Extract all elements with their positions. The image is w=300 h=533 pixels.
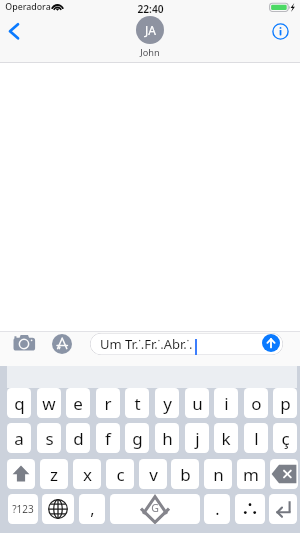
button[interactable]: JA — [120, 16, 180, 57]
button[interactable]: l — [244, 423, 268, 453]
staticText: c — [116, 463, 125, 486]
button[interactable]: c — [106, 459, 134, 489]
button[interactable]: g — [125, 423, 149, 453]
staticText: ç — [281, 427, 290, 450]
button[interactable]: r — [96, 388, 120, 418]
staticText: k — [221, 427, 231, 450]
button[interactable]: Change keyboard — [42, 494, 74, 524]
button[interactable]: t — [125, 388, 149, 418]
staticText: e — [73, 392, 83, 415]
staticText: m — [243, 463, 259, 486]
staticText: JA — [145, 22, 156, 38]
button[interactable]: p — [273, 388, 297, 418]
button[interactable]: App Store — [52, 334, 72, 354]
staticText: j — [195, 427, 200, 450]
staticText: v — [149, 463, 158, 486]
staticText: . — [215, 498, 220, 520]
staticText: b — [180, 463, 191, 486]
button[interactable]: Return — [269, 494, 297, 524]
button[interactable]: q — [7, 388, 31, 418]
button[interactable]: , — [79, 494, 105, 524]
button[interactable]: y — [155, 388, 179, 418]
staticText: 22:40 — [135, 2, 166, 16]
staticText: u — [192, 392, 203, 415]
staticText: Um Tr.˙.Fr.˙.Abr.˙. — [100, 335, 193, 353]
button[interactable]: i — [214, 388, 238, 418]
staticText: t — [134, 392, 141, 415]
button[interactable]: . — [204, 494, 230, 524]
button[interactable]: b — [171, 459, 199, 489]
button[interactable]: m — [237, 459, 265, 489]
staticText: l — [254, 427, 259, 450]
button[interactable]: e — [66, 388, 90, 418]
button[interactable]: Info — [272, 23, 289, 40]
button[interactable]: Camera — [13, 334, 36, 352]
button[interactable]: j — [185, 423, 209, 453]
staticText: ?123 — [12, 502, 34, 516]
button[interactable]: h — [155, 423, 179, 453]
button[interactable]: o — [244, 388, 268, 418]
button[interactable]: d — [66, 423, 90, 453]
button[interactable]: Shift — [7, 459, 35, 489]
button[interactable]: x — [73, 459, 101, 489]
staticText: y — [163, 392, 172, 415]
button[interactable]: Um Tr.˙.Fr.˙.Abr.˙. — [90, 333, 283, 355]
button[interactable]: z — [40, 459, 68, 489]
button[interactable]: ?123 — [8, 494, 38, 524]
button[interactable]: Three dots — [235, 494, 265, 524]
button[interactable]: u — [185, 388, 209, 418]
staticText: s — [45, 427, 54, 450]
staticText: f — [105, 427, 111, 450]
staticText: o — [251, 392, 262, 415]
staticText: a — [14, 427, 24, 450]
staticText: p — [280, 392, 291, 415]
staticText: g — [132, 427, 143, 450]
staticText: r — [104, 392, 112, 415]
staticText: z — [50, 463, 58, 486]
staticText: h — [162, 427, 173, 450]
staticText: John — [120, 46, 180, 59]
button[interactable]: Back — [2, 16, 26, 50]
button[interactable]: f — [96, 423, 120, 453]
staticText: i — [224, 392, 229, 415]
staticText: n — [213, 463, 224, 486]
button[interactable]: v — [139, 459, 167, 489]
staticText: x — [83, 463, 92, 486]
button[interactable]: Backspace — [270, 459, 298, 489]
staticText: q — [14, 392, 25, 415]
button[interactable]: w — [37, 388, 61, 418]
staticText: Operadora — [5, 1, 51, 13]
staticText: w — [42, 392, 56, 415]
button[interactable]: s — [37, 423, 61, 453]
staticText: , — [90, 498, 95, 520]
button[interactable]: n — [204, 459, 232, 489]
button[interactable]: Space — [110, 494, 200, 524]
button[interactable]: Send — [262, 334, 280, 352]
button[interactable]: ç — [273, 423, 297, 453]
staticText: d — [73, 427, 84, 450]
button[interactable]: k — [214, 423, 238, 453]
staticText: G — [151, 501, 159, 515]
button[interactable]: a — [7, 423, 31, 453]
